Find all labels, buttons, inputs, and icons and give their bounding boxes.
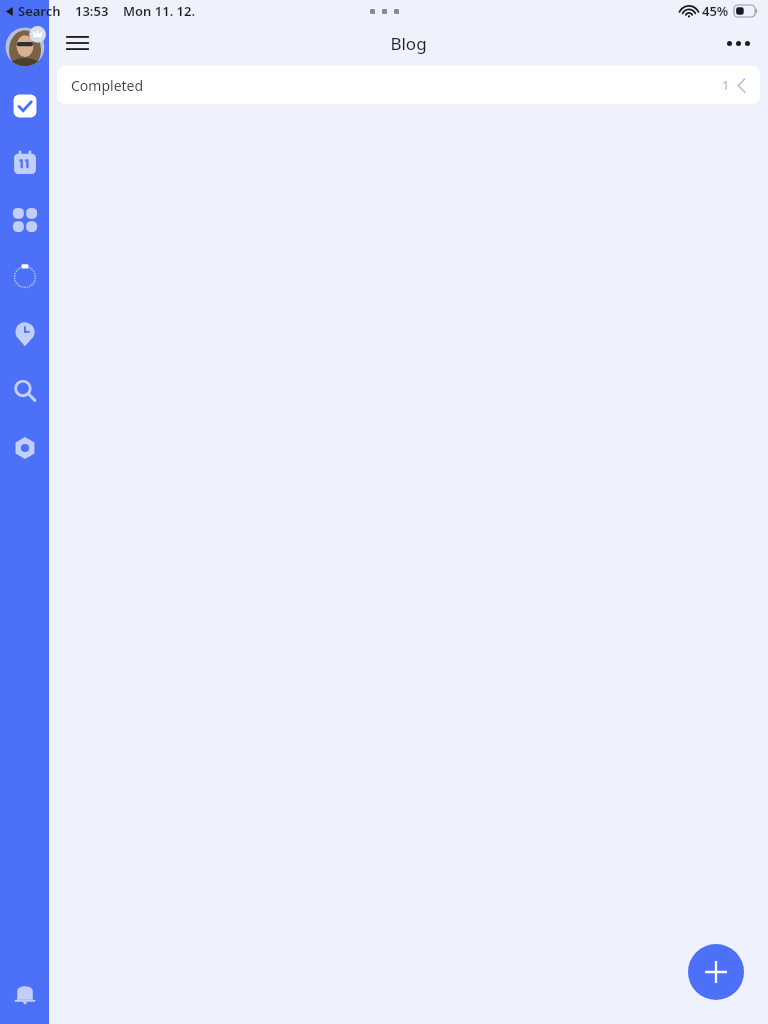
button[interactable]: Menu — [59, 25, 95, 61]
button[interactable]: More options — [720, 25, 756, 61]
staticText: 13:53 — [75, 2, 109, 20]
button[interactable]: Notifications — [5, 974, 45, 1014]
button[interactable]: Completed — [57, 66, 760, 104]
staticText: Blog — [390, 32, 427, 55]
button[interactable]: Add — [688, 944, 744, 1000]
staticText: Mon 11. 12. — [123, 2, 196, 20]
button[interactable]: Calendar — [5, 143, 45, 183]
button[interactable]: Tasks — [5, 86, 45, 126]
button[interactable]: Search — [5, 371, 45, 411]
button[interactable]: Settings — [5, 428, 45, 468]
button[interactable]: Profile — [3, 25, 47, 69]
staticText: Completed — [71, 76, 144, 95]
staticText: Search — [18, 2, 61, 20]
button[interactable]: Places — [5, 314, 45, 354]
staticText: 1 — [722, 76, 730, 94]
staticText: 45% — [702, 2, 729, 20]
button[interactable]: Apps — [5, 200, 45, 240]
button[interactable]: Progress — [5, 257, 45, 297]
